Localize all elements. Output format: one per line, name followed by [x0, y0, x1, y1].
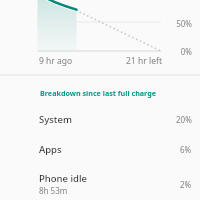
staticText: Phone idle — [39, 172, 87, 185]
staticText: 50% — [166, 18, 192, 29]
staticText: 9 hr ago — [39, 55, 73, 67]
button[interactable]: System — [0, 104, 200, 134]
button[interactable]: Apps — [0, 134, 200, 164]
staticText: 6% — [180, 144, 192, 155]
button[interactable]: Phone idle — [0, 168, 200, 200]
staticText: 21 hr left — [112, 55, 162, 67]
staticText: Apps — [39, 143, 62, 156]
staticText: 0% — [166, 46, 192, 57]
staticText: System — [39, 113, 72, 126]
staticText: Breakdown since last full charge — [40, 88, 157, 98]
staticText: 8h 53m — [39, 185, 68, 196]
staticText: 2% — [180, 179, 192, 190]
staticText: 20% — [176, 114, 192, 125]
